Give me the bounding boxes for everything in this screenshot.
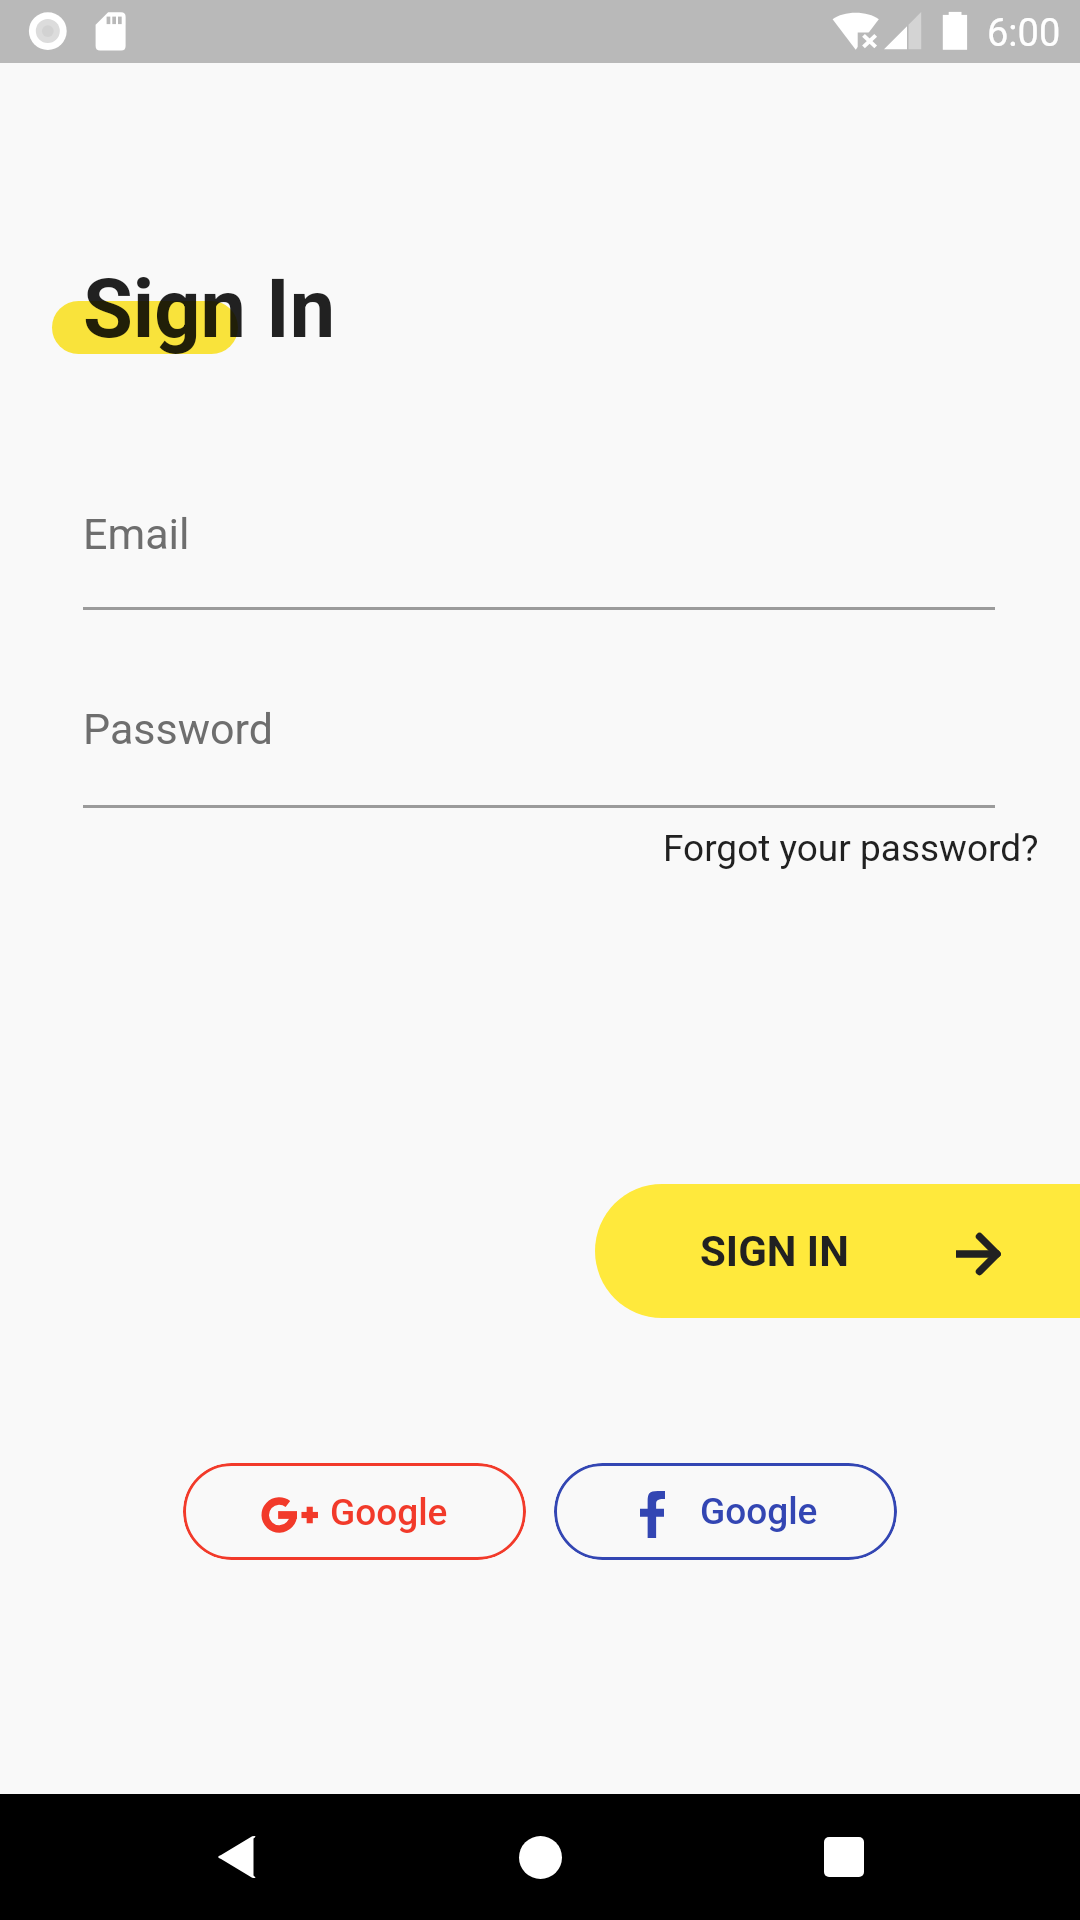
staticText: SIGN IN — [700, 1227, 849, 1276]
staticText: Google — [700, 1490, 818, 1533]
staticText: Forgot your password? — [663, 827, 1039, 870]
button[interactable]: Google — [183, 1463, 526, 1560]
button[interactable]: Password — [83, 695, 995, 808]
staticText: Sign In — [83, 262, 336, 357]
button[interactable]: Google — [554, 1463, 897, 1560]
staticText: Google — [330, 1491, 448, 1534]
staticText: Password — [83, 704, 273, 754]
button[interactable]: Back — [176, 1794, 296, 1920]
staticText: 6:00 — [987, 11, 1061, 56]
staticText: Email — [83, 509, 190, 559]
button[interactable]: Recent apps — [784, 1794, 904, 1920]
button[interactable]: SIGN IN — [595, 1184, 1080, 1318]
button[interactable]: Email — [83, 500, 995, 610]
button[interactable]: Home — [480, 1794, 600, 1920]
button[interactable]: Forgot your password? — [652, 819, 1039, 877]
